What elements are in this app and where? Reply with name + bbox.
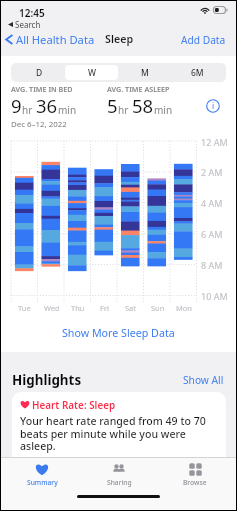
staticText: 2 AM <box>201 166 223 178</box>
staticText: min <box>154 103 173 117</box>
staticText: Search <box>15 19 41 30</box>
staticText: AVG. TIME ASLEEP <box>107 84 170 94</box>
staticText: hr <box>118 103 129 117</box>
button[interactable]: Show More Sleep Data <box>1 323 236 343</box>
staticText: All Health Data <box>16 32 95 47</box>
button[interactable]: W <box>65 65 118 80</box>
staticText: 58 <box>132 93 154 118</box>
button[interactable]: D <box>13 65 65 80</box>
staticText: D <box>36 67 43 79</box>
button[interactable]: Add Data <box>180 30 227 50</box>
staticText: Sleep <box>105 32 134 47</box>
staticText: Mon <box>176 303 192 313</box>
staticText: Sharing <box>107 478 132 487</box>
staticText: Sat <box>125 303 137 313</box>
button[interactable]: Heart Rate: Sleep <box>12 392 226 497</box>
button[interactable]: M <box>118 65 171 80</box>
staticText: Add Data <box>181 33 226 47</box>
button[interactable]: Summary <box>7 458 77 491</box>
staticText: Summary <box>27 478 58 487</box>
staticText: Wed <box>44 303 60 313</box>
staticText: Your heart rate ranged from 49 to 70 bea… <box>20 414 214 453</box>
staticText: AVG. TIME IN BED <box>11 84 73 94</box>
staticText: Heart Rate: Sleep <box>32 398 116 411</box>
staticText: 6M <box>191 67 204 79</box>
staticText: 9 <box>11 93 22 118</box>
staticText: 4 AM <box>201 197 223 209</box>
staticText: W <box>88 67 96 79</box>
staticText: 36 <box>36 93 58 118</box>
button[interactable]: Sharing <box>84 458 154 491</box>
staticText: 8 AM <box>201 259 223 271</box>
staticText: Show All <box>183 373 224 387</box>
button[interactable]: Info <box>206 99 220 113</box>
staticText: 6 AM <box>201 228 223 240</box>
staticText: Show More Sleep Data <box>62 326 175 341</box>
staticText: hr <box>22 103 33 117</box>
staticText: M <box>141 67 149 79</box>
staticText: Highlights <box>12 371 82 389</box>
staticText: Thu <box>71 303 85 313</box>
button[interactable]: Browse <box>160 458 230 491</box>
staticText: Fri <box>100 303 109 313</box>
staticText: 12 AM <box>201 136 228 148</box>
staticText: min <box>58 103 77 117</box>
button[interactable]: Show All <box>181 371 226 389</box>
staticText: 12:45 <box>19 6 45 20</box>
staticText: Tue <box>18 303 31 313</box>
staticText: Dec 6–12, 2022 <box>11 119 67 130</box>
button[interactable]: 6M <box>171 65 224 80</box>
staticText: Browse <box>183 478 207 487</box>
staticText: 5 <box>107 93 118 118</box>
button[interactable]: All Health Data <box>4 29 96 50</box>
staticText: 10 AM <box>201 290 228 302</box>
staticText: i <box>212 100 215 112</box>
staticText: Sun <box>151 303 165 313</box>
